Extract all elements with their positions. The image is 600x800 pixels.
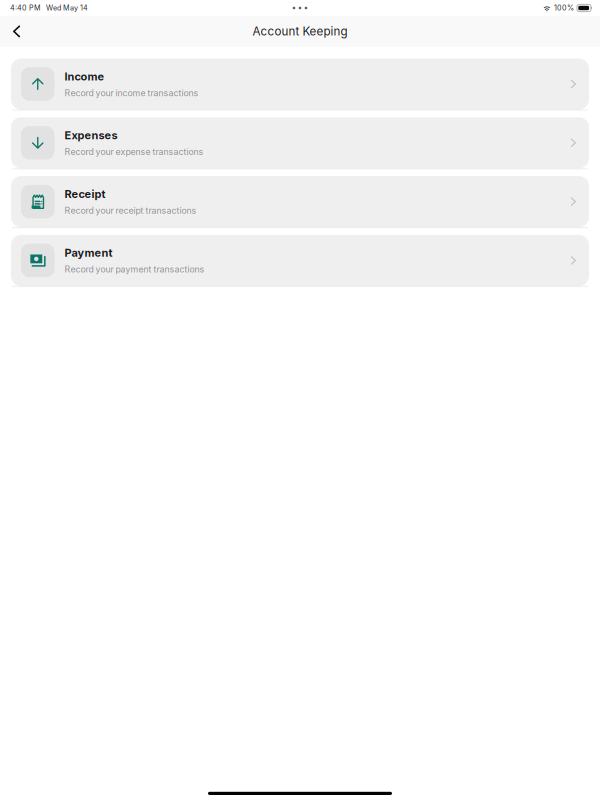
staticText: Expenses: [64, 128, 117, 142]
staticText: Income: [64, 70, 104, 83]
staticText: 100%: [554, 4, 574, 12]
staticText: Record your expense transactions: [64, 146, 203, 157]
staticText: Record your income transactions: [64, 88, 198, 98]
staticText: Account Keeping: [252, 24, 347, 38]
staticText: Wed May 14: [46, 4, 88, 12]
button[interactable]: Expenses: [11, 117, 589, 168]
staticText: Record your receipt transactions: [64, 205, 196, 216]
button[interactable]: Payment: [11, 235, 589, 286]
staticText: Payment: [64, 246, 112, 259]
button[interactable]: Income: [11, 58, 589, 109]
staticText: Record your payment transactions: [64, 264, 204, 275]
button[interactable]: Receipt: [11, 176, 589, 227]
staticText: 4:40 PM: [10, 4, 41, 12]
staticText: Receipt: [64, 187, 105, 201]
button[interactable]: Back: [4, 17, 29, 45]
